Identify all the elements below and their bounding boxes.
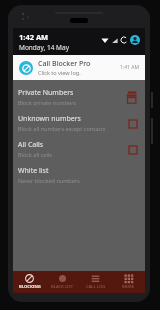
staticText: 1:41 AM [120,64,139,71]
staticText: Private Numbers [18,88,74,98]
button[interactable]: BLOCKING [13,271,46,293]
staticText: CALL LOG [86,284,106,290]
button[interactable]: CALL LOG [79,271,112,293]
button[interactable]: Private Numbers [13,84,145,110]
staticText: All Calls [18,140,44,150]
staticText: Call Blocker Pro [38,59,91,69]
button[interactable]: User account [130,35,140,45]
staticText: Block all numbers except contacts [18,125,106,132]
staticText: Block all calls [18,151,52,158]
button[interactable]: All Calls [13,136,145,162]
button[interactable]: White list [13,162,145,188]
staticText: Click to view log. [38,69,81,76]
staticText: Unknown numbers [18,114,81,124]
button[interactable]: BLACK LIST [46,271,79,293]
staticText: BLACK LIST [51,284,74,290]
staticText: Never blocked numbers [18,177,80,184]
staticText: Block private numbers [18,99,77,106]
staticText: 1:42 AM [19,32,49,42]
button[interactable]: Unknown numbers [13,110,145,136]
staticText: Monday, 14 May [19,43,69,52]
staticText: BLOCKING [19,284,41,290]
staticText: MORE [122,284,135,290]
staticText: White list [18,166,49,176]
button[interactable]: MORE [112,271,145,293]
button[interactable]: Call Blocker Pro [13,55,145,80]
